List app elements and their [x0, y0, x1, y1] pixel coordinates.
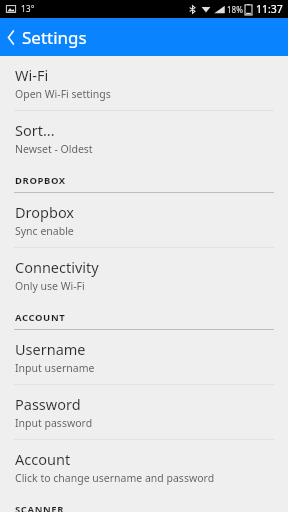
staticText: Account: [15, 449, 71, 469]
button[interactable]: Account: [0, 440, 288, 494]
staticText: Wi-Fi: [15, 65, 49, 85]
staticText: Password: [15, 394, 81, 414]
staticText: DROPBOX: [15, 174, 66, 187]
button[interactable]: Wi-Fi: [0, 56, 288, 111]
staticText: ACCOUNT: [15, 311, 66, 324]
staticText: Username: [15, 339, 86, 359]
staticText: Settings: [22, 26, 87, 49]
staticText: Input password: [15, 416, 93, 430]
staticText: 13°: [21, 3, 35, 15]
staticText: Newset - Oldest: [15, 142, 93, 156]
staticText: Sync enable: [15, 224, 74, 238]
button[interactable]: Connectivity: [0, 248, 288, 302]
staticText: Input username: [15, 361, 95, 375]
button[interactable]: Username: [0, 330, 288, 385]
staticText: Click to change username and password: [15, 471, 215, 485]
staticText: Open Wi-Fi settings: [15, 87, 111, 101]
staticText: Only use Wi-Fi: [15, 279, 85, 293]
button[interactable]: Password: [0, 385, 288, 440]
staticText: 18%: [227, 4, 243, 15]
staticText: SCANNER: [15, 503, 65, 512]
staticText: 11:37: [256, 2, 283, 16]
staticText: Connectivity: [15, 257, 99, 277]
staticText: Dropbox: [15, 202, 75, 222]
button[interactable]: Dropbox: [0, 193, 288, 248]
button[interactable]: Back to Settings: [0, 18, 288, 56]
staticText: Sort...: [15, 120, 55, 140]
button[interactable]: Sort...: [0, 111, 288, 165]
